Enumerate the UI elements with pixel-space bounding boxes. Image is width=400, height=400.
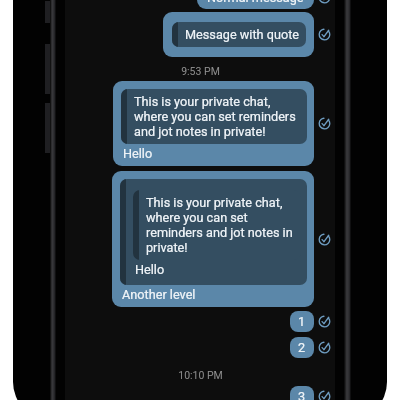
staticText: This is your private chat, where you can… bbox=[134, 94, 301, 139]
staticText: 3 bbox=[298, 389, 306, 400]
staticText: 1 bbox=[298, 314, 306, 329]
staticText: Hello bbox=[135, 262, 165, 277]
staticText: Normal message bbox=[207, 0, 304, 5]
staticText: 2 bbox=[298, 340, 306, 355]
staticText: Another level bbox=[122, 287, 196, 302]
other: Message delivered bbox=[318, 390, 331, 400]
button[interactable]: This is your private chat, where you can… bbox=[112, 171, 314, 307]
button[interactable]: 3 bbox=[290, 386, 314, 400]
other: Message delivered bbox=[318, 0, 331, 4]
staticText: 10:10 PM bbox=[178, 369, 223, 381]
button[interactable]: Normal message bbox=[197, 0, 314, 9]
other: Message delivered bbox=[318, 28, 331, 41]
button[interactable]: 1 bbox=[290, 311, 314, 332]
other: Message delivered bbox=[318, 315, 331, 328]
staticText: Message with quote bbox=[185, 27, 300, 42]
button[interactable]: This is your private chat, where you can… bbox=[113, 81, 314, 166]
other: Message delivered bbox=[318, 233, 331, 246]
other: Message delivered bbox=[318, 117, 331, 130]
button[interactable]: 2 bbox=[290, 337, 314, 358]
other: Message delivered bbox=[318, 341, 331, 354]
staticText: This is your private chat, where you can… bbox=[146, 195, 295, 255]
staticText: Hello bbox=[123, 146, 153, 161]
staticText: 9:53 PM bbox=[181, 65, 220, 77]
button[interactable]: Message with quote bbox=[163, 12, 314, 57]
